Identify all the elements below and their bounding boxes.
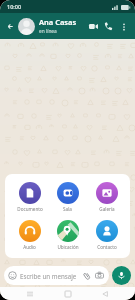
staticText: Contacto [97,244,117,250]
button[interactable]: Recents [22,287,38,300]
staticText: en línea [39,28,57,35]
button[interactable]: Sala [49,181,86,213]
button[interactable]: Documento [11,181,48,213]
staticText: Ana Casas [39,17,77,27]
button[interactable]: Video call [86,19,101,34]
button[interactable]: Escribe un mensaje [4,266,109,285]
staticText: Documento [17,206,43,212]
staticText: Audio [23,244,36,250]
button[interactable]: Back [4,20,17,33]
staticText: 10:00 [7,3,22,10]
button[interactable]: Voice message [112,266,131,285]
button[interactable]: Audio [11,219,48,251]
staticText: Ubicación [57,244,79,250]
button[interactable]: Contacto [88,219,125,251]
button[interactable]: More options [116,19,131,34]
button[interactable]: Ana Casas [18,17,86,35]
button[interactable]: Camera [94,270,105,281]
button[interactable]: Call [101,19,116,34]
button[interactable]: Home [60,287,76,300]
button[interactable]: Back [97,287,113,300]
staticText: Sala [63,206,72,212]
button[interactable]: Attach [81,270,92,281]
staticText: Galería [99,206,115,212]
button[interactable]: Galería [88,181,125,213]
button[interactable]: Ubicación [49,219,86,251]
staticText: Escribe un mensaje [20,272,77,280]
